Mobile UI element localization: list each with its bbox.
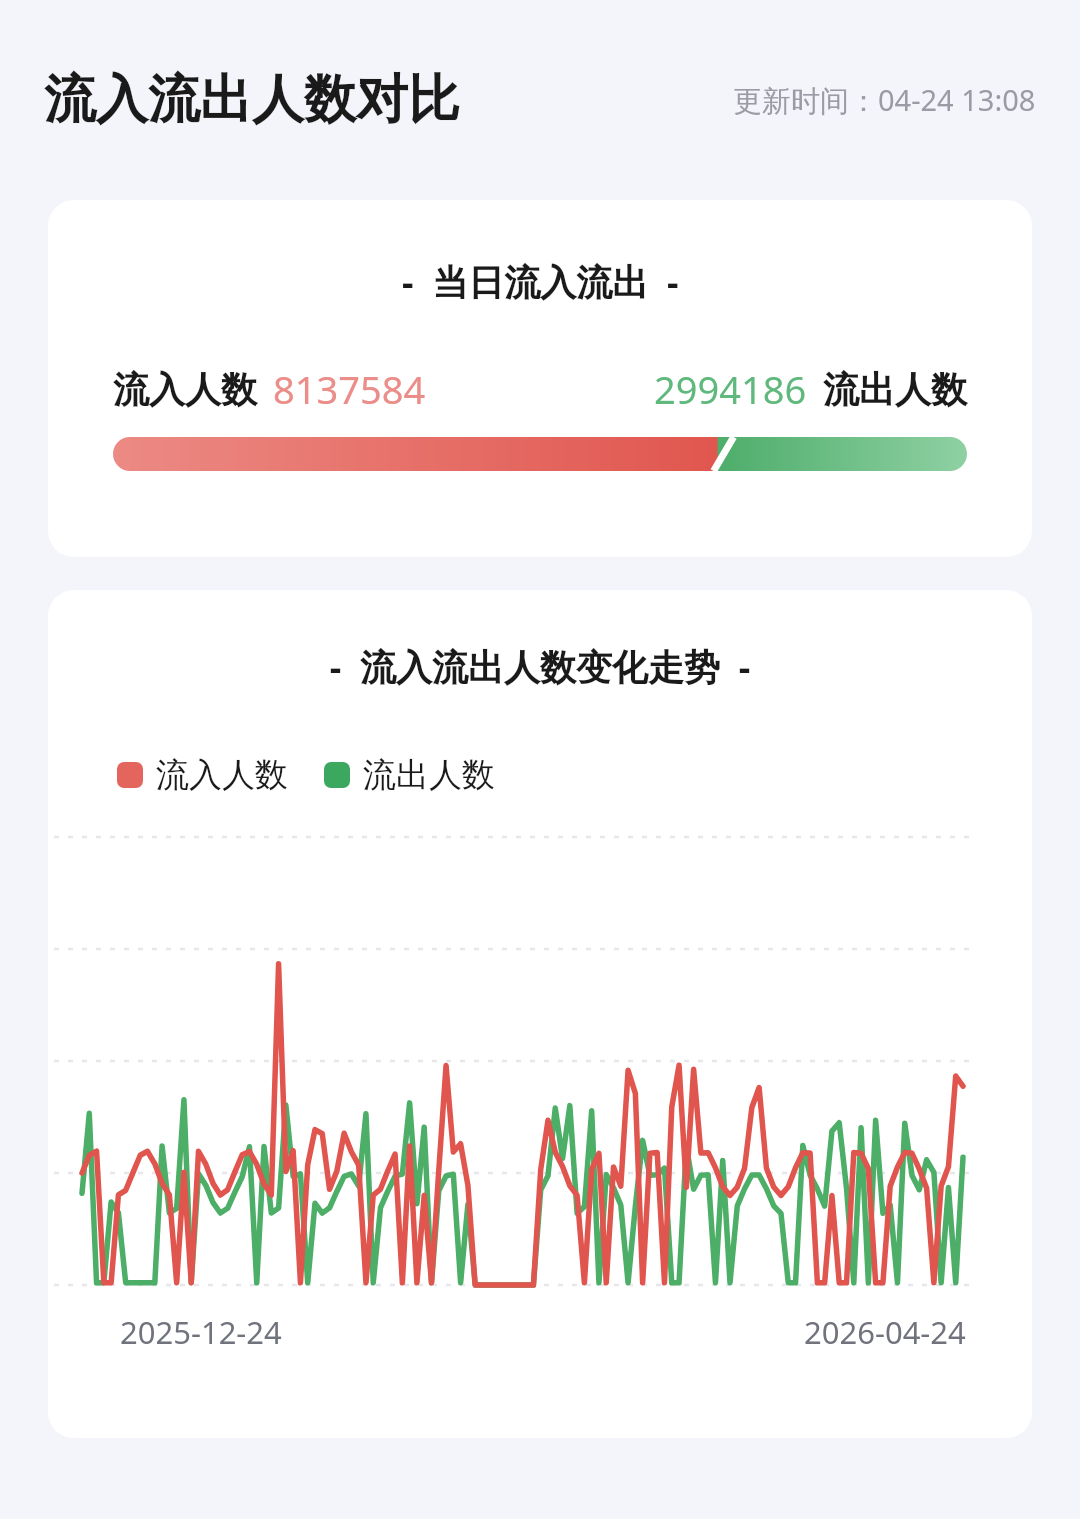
button[interactable]: - 流入流出人数变化走势 -	[48, 590, 1032, 1438]
staticText: 流出人数	[823, 367, 967, 412]
staticText: 2994186	[654, 363, 807, 415]
button[interactable]: - 当日流入流出 -	[48, 200, 1032, 557]
staticText: 流入人数	[113, 367, 257, 412]
staticText: 流入人数	[156, 754, 288, 796]
staticText: 8137584	[273, 363, 426, 415]
staticText: 更新时间：04-24 13:08	[733, 80, 1036, 120]
staticText: - 当日流入流出 -	[402, 257, 679, 306]
staticText: 流入流出人数对比	[44, 67, 460, 133]
staticText: 2026-04-24	[804, 1311, 966, 1353]
staticText: 流出人数	[363, 754, 495, 796]
staticText: - 流入流出人数变化走势 -	[48, 642, 1032, 691]
staticText: 2025-12-24	[120, 1311, 282, 1353]
